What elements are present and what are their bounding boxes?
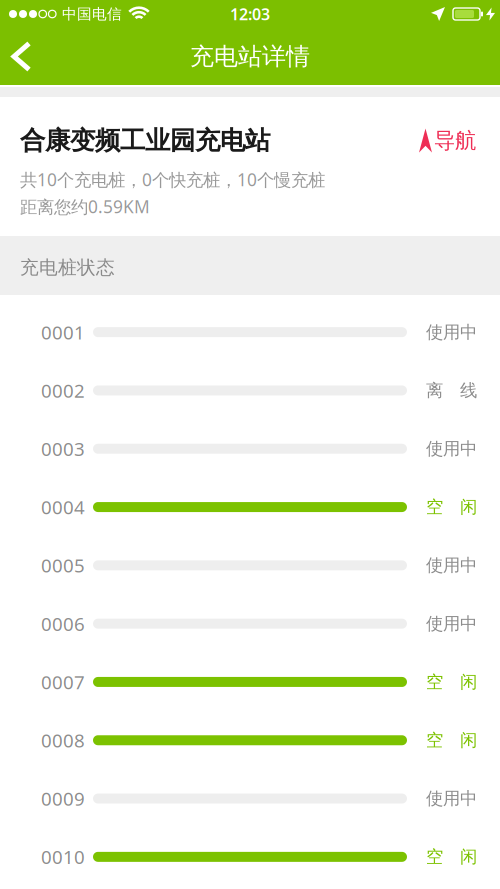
staticText: 中国电信 [62,5,122,23]
staticText: 充电桩状态 [20,256,115,279]
staticText: 0004 [41,495,85,519]
staticText: 共10个充电桩，0个快充桩，10个慢充桩 [20,168,325,191]
staticText: 使用中 [426,613,477,634]
button[interactable]: Back [0,29,29,83]
staticText: 0001 [41,320,85,345]
staticText: 空 闲 [426,496,477,518]
staticText: 空 闲 [426,846,477,867]
staticText: 0002 [41,378,85,403]
staticText: 0006 [41,611,85,636]
staticText: 0007 [41,670,85,694]
staticText: 合康变频工业园充电站 [20,125,270,156]
staticText: 0003 [41,436,85,461]
staticText: 使用中 [426,788,477,809]
button[interactable]: 导航 [419,127,476,154]
staticText: 导航 [434,127,476,154]
staticText: 距离您约0.59KM [20,195,150,218]
staticText: 离 线 [426,380,477,401]
staticText: 使用中 [426,321,477,343]
staticText: 空 闲 [426,730,477,751]
staticText: 0010 [41,844,85,869]
staticText: 0009 [41,786,85,811]
staticText: 使用中 [426,555,477,576]
staticText: 0005 [41,553,85,578]
staticText: 使用中 [426,438,477,459]
staticText: 空 闲 [426,671,477,693]
staticText: 0008 [41,728,85,753]
staticText: 充电站详情 [190,42,310,71]
staticText: 12:03 [230,3,270,25]
